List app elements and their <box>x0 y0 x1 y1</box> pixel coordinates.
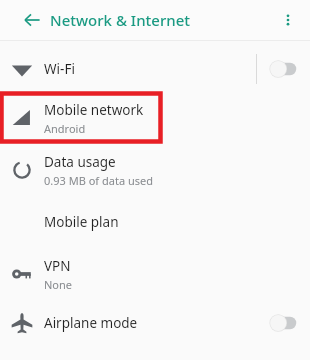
button[interactable]: More options <box>274 6 302 34</box>
staticText: Mobile network <box>44 101 144 119</box>
button[interactable]: Mobile network <box>0 92 310 144</box>
staticText: None <box>44 277 73 292</box>
staticText: 0.93 MB of data used <box>44 173 153 188</box>
staticText: Mobile plan <box>44 213 119 231</box>
staticText: Airplane mode <box>44 314 138 332</box>
staticText: Network & Internet <box>50 10 191 30</box>
button[interactable]: Mobile plan <box>0 196 310 248</box>
button[interactable]: Toggle Wi-Fi <box>257 46 310 92</box>
staticText: VPN <box>44 257 71 275</box>
button[interactable]: Toggle Airplane mode <box>257 300 310 346</box>
staticText: Android <box>44 121 86 136</box>
button[interactable]: Airplane mode <box>0 300 310 346</box>
button[interactable]: Back <box>18 6 46 34</box>
button[interactable]: VPN <box>0 248 310 300</box>
staticText: Wi-Fi <box>44 60 75 78</box>
staticText: Data usage <box>44 153 116 171</box>
button[interactable]: Wi-Fi <box>0 46 310 92</box>
button[interactable]: Data usage <box>0 144 310 196</box>
